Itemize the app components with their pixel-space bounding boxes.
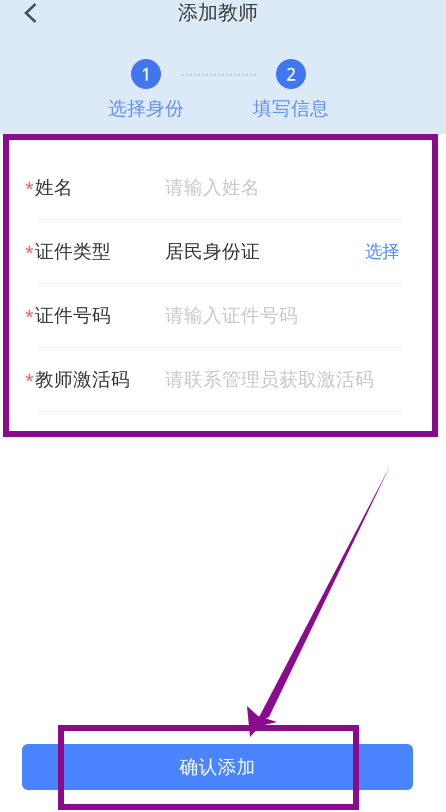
button[interactable]: *: [0, 220, 446, 283]
staticText: 选择身份: [108, 97, 184, 120]
staticText: 添加教师: [178, 0, 258, 25]
button[interactable]: Back: [8, 0, 54, 26]
staticText: 请输入姓名: [165, 176, 260, 199]
staticText: 姓名: [35, 176, 73, 199]
staticText: 居民身份证: [165, 240, 260, 263]
staticText: 填写信息: [253, 97, 329, 120]
staticText: *: [25, 369, 34, 390]
button[interactable]: *: [0, 348, 446, 411]
staticText: 1: [141, 62, 151, 85]
button[interactable]: *: [0, 284, 446, 347]
staticText: 请输入证件号码: [165, 304, 298, 327]
button[interactable]: 确认添加: [22, 744, 413, 790]
staticText: *: [25, 241, 34, 262]
staticText: 请联系管理员获取激活码: [165, 368, 374, 391]
staticText: *: [25, 305, 34, 326]
staticText: *: [25, 177, 34, 198]
staticText: 证件类型: [35, 240, 111, 263]
staticText: 证件号码: [35, 304, 111, 327]
staticText: 选择: [365, 241, 399, 262]
staticText: 2: [286, 62, 296, 85]
button[interactable]: *: [0, 156, 446, 219]
staticText: 确认添加: [179, 755, 255, 778]
staticText: 教师激活码: [35, 368, 130, 391]
